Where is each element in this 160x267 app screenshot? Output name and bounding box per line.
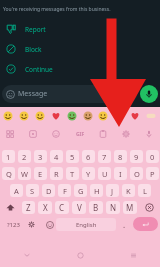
staticText: 0 [150, 152, 155, 162]
button[interactable]: H [90, 184, 103, 197]
button[interactable]: Z [22, 201, 35, 214]
button[interactable]: English [56, 218, 116, 231]
staticText: A [14, 186, 19, 196]
button[interactable]: Stickers [23, 125, 43, 143]
staticText: L [143, 186, 147, 196]
staticText: M [126, 202, 134, 213]
button[interactable]: Emoji 3 [32, 107, 48, 125]
staticText: C [59, 202, 65, 213]
button[interactable]: Emoji 9 [127, 107, 143, 125]
staticText: R [54, 169, 59, 179]
button[interactable]: K [122, 184, 135, 197]
button[interactable]: 5 [66, 150, 79, 163]
staticText: Message [18, 89, 48, 99]
button[interactable]: D [42, 184, 55, 197]
button[interactable]: Emoji 8 [111, 107, 127, 125]
button[interactable]: J [106, 184, 119, 197]
staticText: K [126, 186, 131, 196]
button[interactable]: Settings [116, 125, 136, 143]
staticText: B [93, 202, 99, 213]
staticText: Y [86, 169, 91, 179]
button[interactable]: I [114, 167, 127, 180]
button[interactable]: Voice message [140, 85, 158, 103]
button[interactable]: T [66, 167, 79, 180]
button[interactable]: Emoji 5 [64, 107, 80, 125]
staticText: F [63, 186, 67, 196]
button[interactable]: V [72, 201, 86, 214]
button[interactable]: Emoji 2 [16, 107, 32, 125]
button[interactable]: . [117, 217, 131, 232]
button[interactable]: Emoji 7 [95, 107, 111, 125]
button[interactable]: Block [0, 39, 160, 59]
button[interactable]: B [89, 201, 103, 214]
button[interactable]: Emoji 4 [48, 107, 64, 125]
button[interactable]: Emoji 1 [0, 107, 16, 125]
button[interactable]: Emoji [0, 125, 20, 143]
button[interactable]: Report [0, 19, 160, 39]
button[interactable]: 8 [114, 150, 127, 163]
button[interactable]: U [98, 167, 111, 180]
button[interactable]: 3 [34, 150, 47, 163]
button[interactable]: Y [82, 167, 95, 180]
button[interactable]: C [55, 201, 69, 214]
button[interactable]: A [10, 184, 23, 197]
staticText: 7 [102, 152, 107, 162]
button[interactable]: Emoji 10 [143, 107, 159, 125]
button[interactable]: W [18, 167, 31, 180]
button[interactable]: Avatar [46, 125, 66, 143]
button[interactable]: G [74, 184, 87, 197]
staticText: Report [25, 25, 46, 34]
staticText: E [38, 169, 43, 179]
button[interactable]: Backspace [140, 201, 158, 214]
button[interactable]: Message [2, 85, 137, 103]
button[interactable]: Clipboard [93, 125, 113, 143]
staticText: I [119, 169, 122, 179]
staticText: P [150, 169, 155, 179]
button[interactable]: 1 [2, 150, 15, 163]
button[interactable]: N [106, 201, 120, 214]
staticText: You're receiving messages from this busi… [3, 6, 111, 13]
button[interactable]: L [138, 184, 151, 197]
button[interactable]: 2 [18, 150, 31, 163]
button[interactable]: Q [2, 167, 15, 180]
staticText: 9 [134, 152, 139, 162]
button[interactable]: S [26, 184, 39, 197]
staticText: 8 [118, 152, 123, 162]
staticText: V [77, 202, 82, 213]
button[interactable]: 6 [82, 150, 95, 163]
staticText: Continue [25, 65, 53, 74]
button[interactable]: R [50, 167, 63, 180]
staticText: Z [26, 202, 31, 213]
button[interactable]: Voice input [139, 125, 159, 143]
button[interactable]: P [146, 167, 159, 180]
staticText: . [123, 219, 126, 230]
button[interactable]: GIF [70, 125, 90, 143]
staticText: 2 [22, 152, 27, 162]
button[interactable]: E [34, 167, 47, 180]
button[interactable]: F [58, 184, 71, 197]
button[interactable]: X [38, 201, 52, 214]
staticText: N [110, 202, 117, 213]
staticText: 3 [38, 152, 43, 162]
button[interactable]: Enter [133, 217, 158, 231]
button[interactable]: M [123, 201, 137, 214]
staticText: W [21, 169, 28, 179]
staticText: Q [6, 169, 12, 179]
button[interactable]: 0 [146, 150, 159, 163]
button[interactable]: 4 [50, 150, 63, 163]
button[interactable]: 9 [130, 150, 143, 163]
button[interactable]: 7 [98, 150, 111, 163]
button[interactable]: Shift [2, 201, 19, 214]
button[interactable]: ?123 [2, 217, 24, 232]
button[interactable]: Emoji keyboard [42, 217, 57, 232]
button[interactable]: Settings [24, 217, 38, 232]
staticText: GIF [76, 131, 85, 138]
staticText: H [94, 186, 100, 196]
button[interactable]: O [130, 167, 143, 180]
button[interactable]: Emoji 6 [80, 107, 96, 125]
button[interactable]: Continue [0, 59, 160, 79]
staticText: 6 [86, 152, 91, 162]
